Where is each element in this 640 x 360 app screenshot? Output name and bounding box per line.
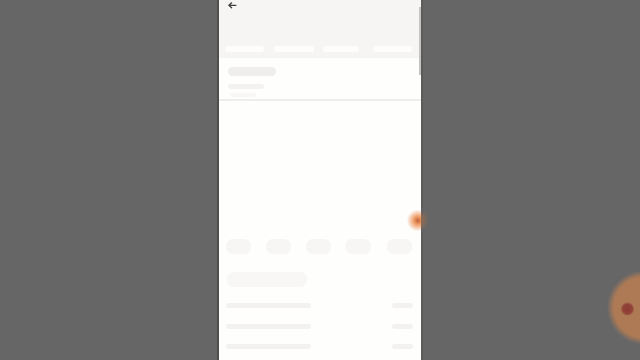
- button[interactable]: [604, 267, 640, 348]
- button[interactable]: [408, 208, 432, 233]
- button[interactable]: [223, 0, 241, 13]
